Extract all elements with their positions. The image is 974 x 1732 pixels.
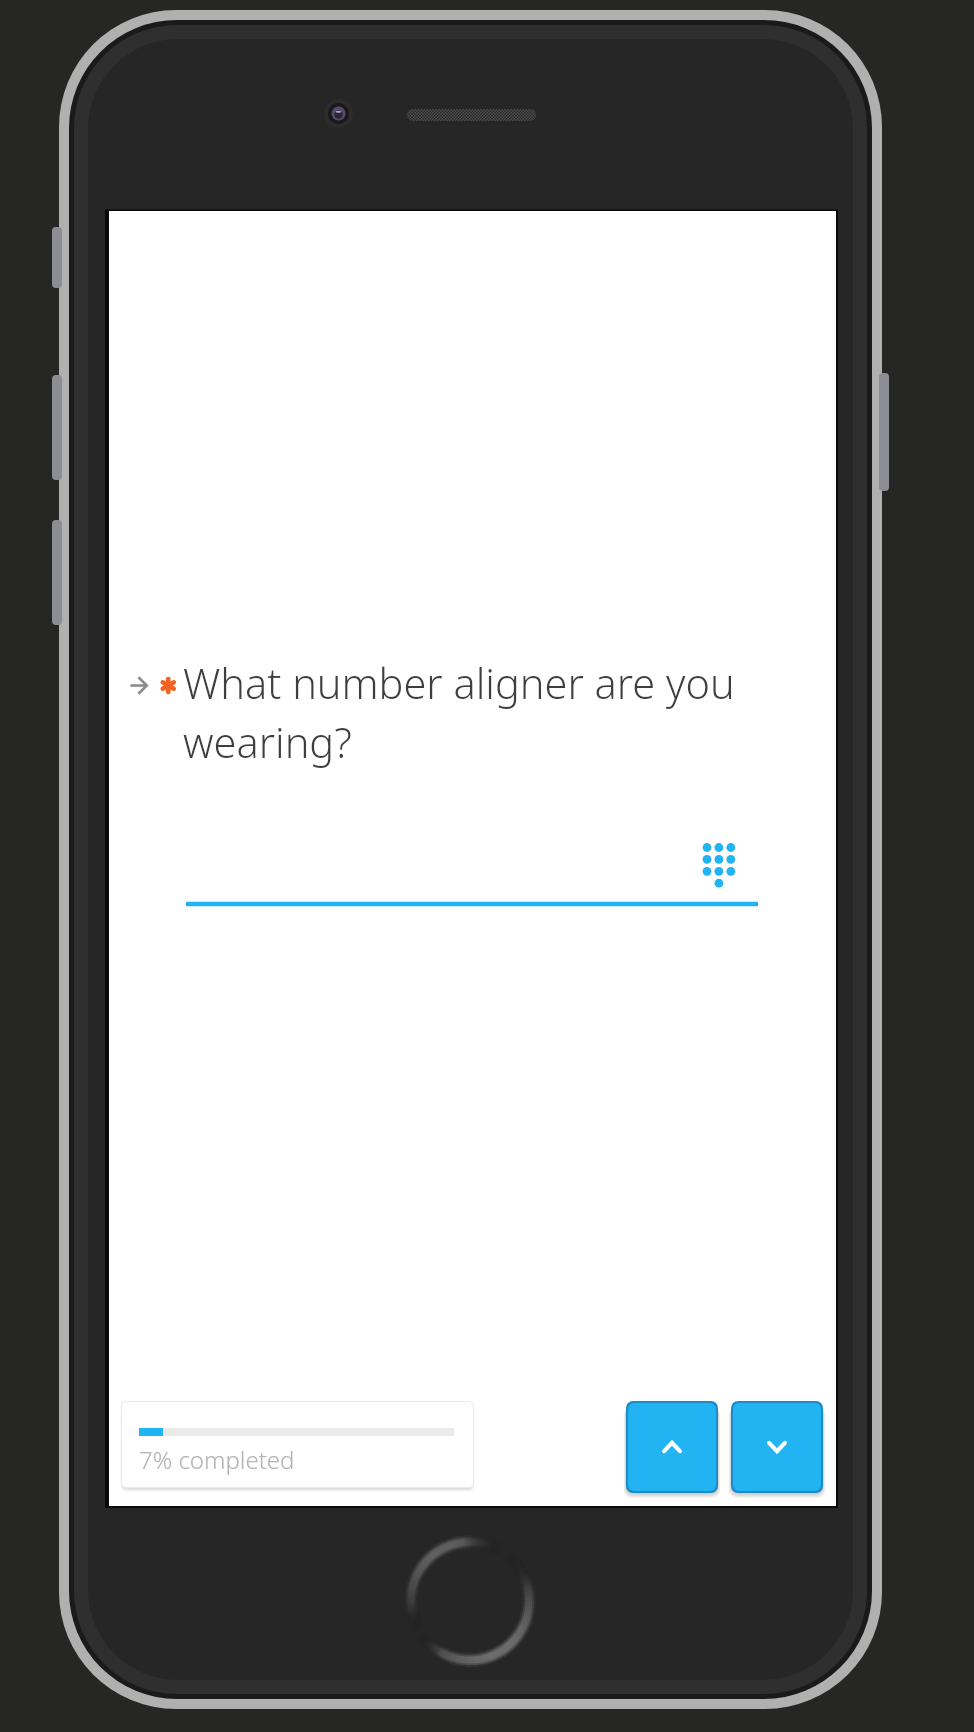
button[interactable]: Next question: [731, 1401, 823, 1493]
staticText: 7% completed: [139, 1443, 295, 1476]
button[interactable]: Answer, numeric input: [179, 819, 779, 921]
button[interactable]: Previous question: [626, 1401, 718, 1493]
staticText: What number aligner are you wearing?: [183, 655, 747, 770]
